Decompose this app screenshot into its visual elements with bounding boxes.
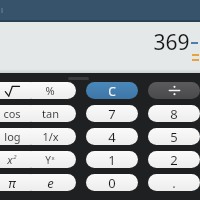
button[interactable]: Square root (0, 82, 38, 99)
staticText: 4 (108, 128, 116, 145)
button[interactable]: 4 (86, 128, 138, 145)
button[interactable]: 1 (86, 151, 138, 168)
staticText: . (172, 174, 176, 191)
button[interactable]: 0 (86, 174, 138, 191)
staticText: 5 (170, 128, 178, 145)
button[interactable]: log (0, 128, 38, 145)
staticText: log (4, 129, 21, 144)
staticText: 369 (153, 28, 190, 57)
button[interactable]: Divide (148, 82, 200, 99)
staticText: 0 (108, 174, 116, 191)
button[interactable]: 7 (86, 105, 138, 122)
button[interactable]: tan (24, 105, 76, 122)
button[interactable]: % (24, 82, 76, 99)
button[interactable]: 5 (148, 128, 200, 145)
staticText: e (47, 174, 54, 191)
staticText: C (108, 83, 116, 99)
staticText: x (7, 152, 13, 167)
button[interactable]: e (24, 174, 76, 191)
staticText: 8 (170, 105, 178, 122)
staticText: % (45, 83, 55, 98)
staticText: cos (3, 106, 21, 121)
staticText: 1/x (42, 129, 59, 144)
button[interactable]: x (0, 151, 38, 168)
button[interactable]: π (0, 174, 38, 191)
staticText: 7 (108, 105, 116, 122)
staticText: 2 (170, 151, 178, 168)
button[interactable]: 1/x (24, 128, 76, 145)
button[interactable]: 8 (148, 105, 200, 122)
button[interactable]: . (148, 174, 200, 191)
button[interactable]: 2 (148, 151, 200, 168)
button[interactable]: cos (0, 105, 38, 122)
staticText: 1 (108, 151, 116, 168)
staticText: x (51, 154, 55, 162)
staticText: Y (45, 153, 51, 167)
button[interactable]: Y (24, 151, 76, 168)
staticText: π (8, 174, 16, 191)
staticText: tan (42, 106, 59, 121)
button[interactable]: C (86, 82, 138, 99)
staticText: 2 (13, 153, 17, 161)
